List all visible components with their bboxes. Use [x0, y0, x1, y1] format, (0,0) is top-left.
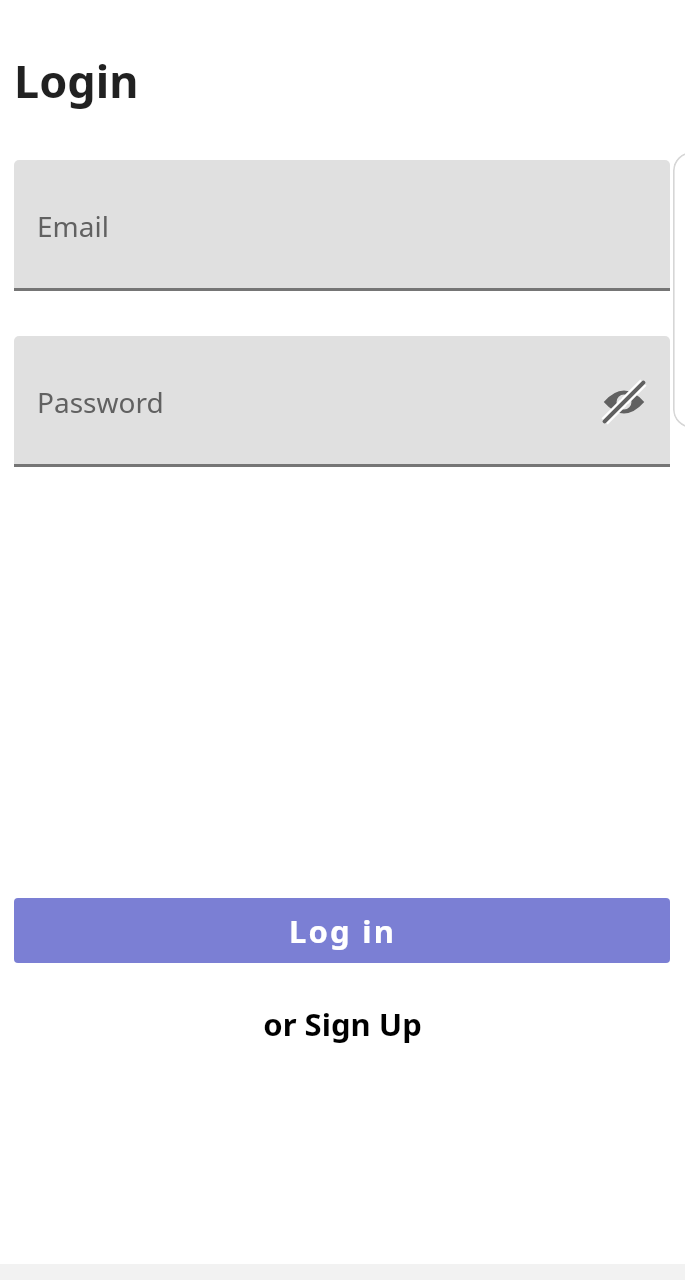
button[interactable]: Password — [14, 336, 670, 467]
staticText: or Sign Up — [263, 1003, 422, 1045]
staticText: Login — [14, 50, 139, 111]
button[interactable]: Email — [14, 160, 670, 291]
button[interactable]: Show password — [600, 378, 648, 426]
staticText: Log in — [289, 910, 396, 952]
button[interactable]: or Sign Up — [0, 996, 685, 1052]
button[interactable]: Log in — [14, 898, 670, 963]
staticText: Email — [37, 207, 109, 245]
staticText: Password — [37, 383, 164, 421]
